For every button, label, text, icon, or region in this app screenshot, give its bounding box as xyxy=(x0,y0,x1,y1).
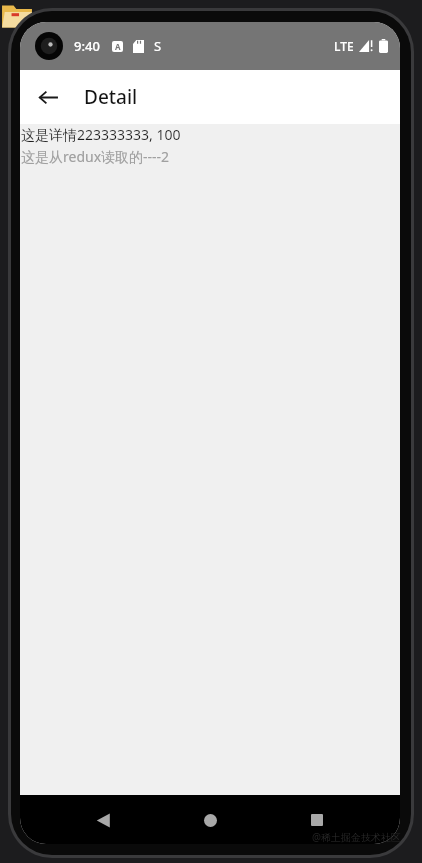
staticText: S xyxy=(154,37,162,55)
staticText: LTE xyxy=(334,38,354,54)
staticText: A xyxy=(115,41,121,52)
button[interactable]: Back xyxy=(28,77,68,117)
button[interactable]: Recents xyxy=(296,799,338,841)
staticText: 这是详情223333333, 100 xyxy=(21,125,181,144)
staticText: @稀土掘金技术社区 xyxy=(312,830,401,844)
staticText: 9:40 xyxy=(74,37,100,55)
staticText: Detail xyxy=(84,84,138,110)
button[interactable]: Back xyxy=(82,799,124,841)
button[interactable]: Home xyxy=(189,799,231,841)
staticText: 这是从redux读取的----2 xyxy=(21,147,170,166)
